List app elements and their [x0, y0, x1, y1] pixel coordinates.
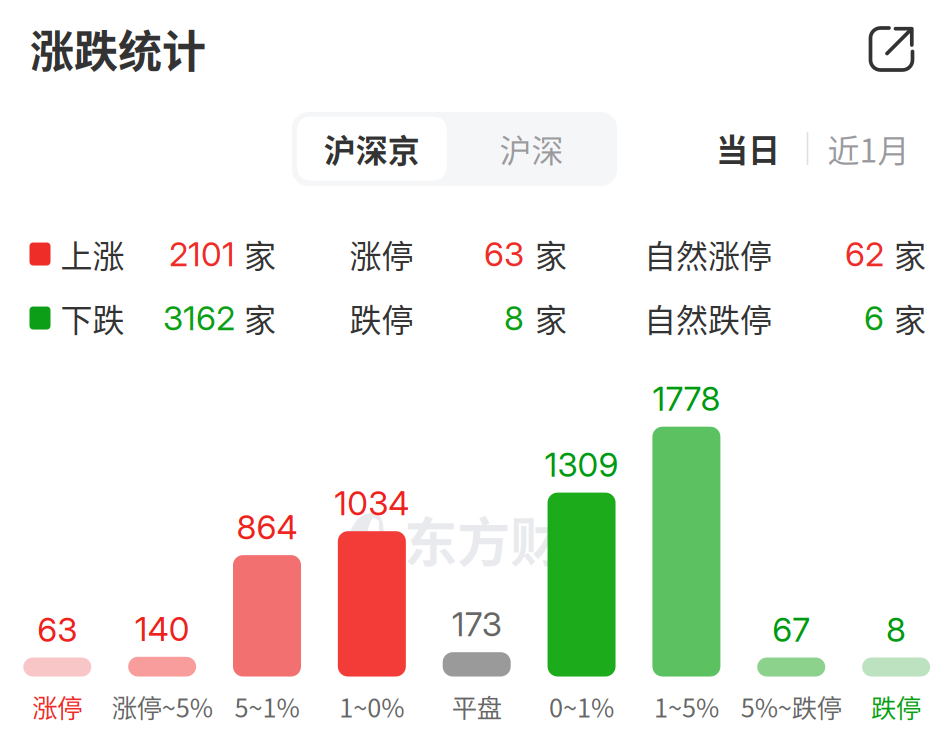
staticText: 2101	[169, 234, 235, 274]
staticText: 平盘	[452, 688, 502, 725]
staticText: 东方财富	[404, 500, 616, 578]
staticText: 1~5%	[654, 688, 719, 725]
staticText: 涨停	[349, 231, 413, 277]
staticText: 家	[535, 295, 567, 341]
staticText: 864	[236, 507, 297, 547]
staticText: 8	[504, 298, 524, 338]
staticText: 自然跌停	[644, 295, 772, 341]
staticText: 8	[886, 609, 906, 650]
staticText: 沪深京	[324, 125, 420, 172]
button[interactable]: Share	[853, 11, 929, 87]
staticText: 1034	[334, 483, 409, 523]
staticText: 上涨	[60, 231, 124, 277]
staticText: 5~1%	[234, 688, 299, 725]
staticText: 67	[772, 609, 810, 650]
staticText: 家	[894, 295, 926, 341]
staticText: 家	[535, 231, 567, 277]
button[interactable]: 沪深京	[297, 116, 447, 180]
staticText: 下跌	[60, 295, 124, 341]
staticText: 140	[135, 609, 190, 649]
staticText: 涨跌统计	[30, 17, 206, 80]
staticText: 涨停~5%	[112, 688, 213, 725]
staticText: 近1月	[827, 125, 909, 172]
staticText: 家	[244, 295, 276, 341]
staticText: 家	[244, 231, 276, 277]
staticText: 沪深	[499, 125, 563, 172]
staticText: 1309	[544, 444, 618, 485]
staticText: 63	[37, 609, 77, 650]
staticText: 3162	[163, 298, 235, 338]
staticText: 173	[452, 604, 502, 644]
staticText: 自然涨停	[644, 231, 772, 277]
staticText: 62	[845, 234, 884, 274]
staticText: 5%~跌停	[741, 688, 842, 725]
staticText: 家	[894, 231, 926, 277]
staticText: 当日	[716, 125, 780, 171]
staticText: 涨停	[32, 688, 82, 725]
staticText: 63	[484, 234, 524, 274]
staticText: 跌停	[871, 688, 921, 725]
staticText: 1~0%	[339, 688, 404, 725]
staticText: 1778	[652, 378, 720, 419]
staticText: 6	[864, 298, 884, 338]
staticText: 跌停	[349, 295, 413, 341]
button[interactable]: 近1月	[818, 118, 918, 178]
button[interactable]: 当日	[705, 118, 791, 178]
staticText: 0~1%	[549, 688, 614, 725]
button[interactable]: 沪深	[456, 116, 606, 180]
